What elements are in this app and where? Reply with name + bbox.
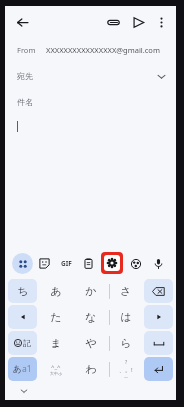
staticText: XXXXXXXXXXXXXXXX@gmail.com — [46, 45, 160, 55]
button[interactable]: Enter — [144, 357, 173, 381]
button[interactable]: Toolbar apps — [12, 253, 33, 274]
button[interactable]: Punctuation — [109, 357, 142, 381]
button[interactable]: Hide keyboard — [17, 384, 31, 398]
button[interactable]: ま — [39, 331, 72, 355]
button[interactable]: は — [109, 305, 142, 329]
staticText: ら — [120, 336, 132, 350]
button[interactable]: た — [39, 305, 72, 329]
button[interactable]: ら — [109, 331, 142, 355]
staticText: 件名 — [17, 97, 33, 107]
staticText: — — [124, 374, 128, 379]
button[interactable]: Attach — [102, 11, 124, 33]
button[interactable]: More options — [150, 11, 172, 33]
staticText: 記 — [23, 338, 31, 348]
button[interactable]: ち — [8, 279, 37, 303]
staticText: は — [120, 310, 132, 324]
button[interactable]: さ — [109, 279, 142, 303]
button[interactable]: Back — [11, 11, 33, 33]
staticText: From — [17, 45, 36, 55]
button[interactable]: Backspace — [144, 279, 173, 303]
button[interactable]: な — [74, 305, 107, 329]
button[interactable]: From — [5, 37, 176, 63]
button[interactable]: Cursor right — [144, 305, 173, 329]
staticText: あ — [13, 364, 22, 375]
button[interactable]: Themes — [125, 253, 146, 274]
staticText: GIF — [61, 259, 72, 268]
button[interactable]: Settings — [101, 252, 123, 274]
staticText: や — [85, 336, 97, 350]
button[interactable]: わ — [74, 357, 107, 381]
button[interactable]: や — [74, 331, 107, 355]
button[interactable]: Cursor left — [8, 305, 37, 329]
button[interactable]: GIF — [56, 253, 77, 274]
staticText: た — [50, 310, 62, 324]
button[interactable]: 宛先 — [5, 63, 176, 89]
button[interactable]: Stickers — [34, 253, 55, 274]
button[interactable]: Send — [127, 11, 149, 33]
button[interactable]: 件名 — [5, 89, 176, 115]
staticText: 、。! — [119, 366, 133, 374]
button[interactable]: Voice input — [148, 253, 169, 274]
button[interactable]: Clipboard — [78, 253, 99, 274]
staticText: わ — [85, 362, 97, 376]
staticText: a1 — [22, 363, 32, 375]
staticText: ^_^ — [51, 363, 61, 371]
staticText: ち — [17, 284, 29, 298]
button[interactable]: あ — [39, 279, 72, 303]
button[interactable]: Kaomoji — [39, 357, 72, 381]
staticText: さ — [120, 284, 132, 298]
staticText: ま — [50, 336, 62, 350]
staticText: な — [85, 310, 97, 324]
staticText: 大中小 — [50, 371, 62, 376]
button[interactable]: Emoji and symbols — [8, 331, 37, 355]
staticText: か — [85, 284, 97, 298]
staticText: あ — [50, 284, 62, 298]
button[interactable]: Switch input mode — [8, 357, 37, 381]
staticText: 宛先 — [17, 71, 33, 81]
button[interactable] — [5, 115, 176, 137]
button[interactable]: か — [74, 279, 107, 303]
staticText: ? — [125, 359, 128, 366]
button[interactable]: Space — [144, 331, 173, 355]
